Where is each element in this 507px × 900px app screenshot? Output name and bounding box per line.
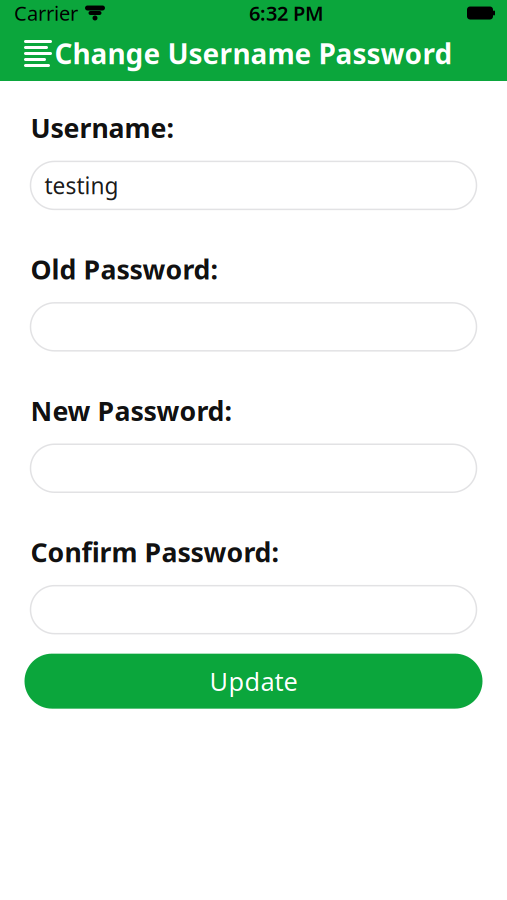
button[interactable]: Update <box>24 654 482 709</box>
staticText: Update <box>209 664 297 698</box>
button[interactable]: Menu <box>12 30 64 77</box>
staticText: Confirm Password: <box>30 534 278 570</box>
staticText: 6:32 PM <box>249 0 324 26</box>
staticText: New Password: <box>30 393 231 428</box>
staticText: Change Username Password <box>54 35 452 72</box>
staticText: Username: <box>30 110 173 145</box>
staticText: Old Password: <box>30 251 217 287</box>
staticText: Carrier <box>14 0 78 26</box>
staticText: testing <box>44 170 118 200</box>
